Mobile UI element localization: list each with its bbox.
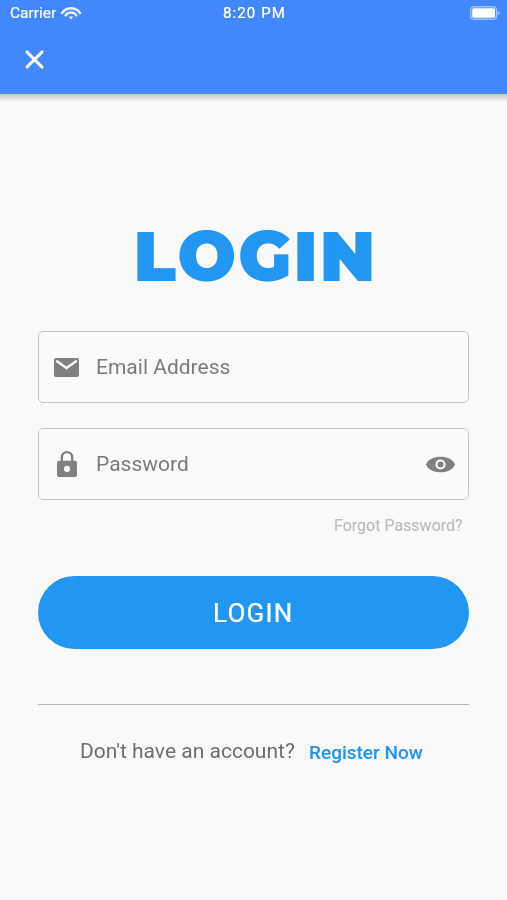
button[interactable]: Show password: [420, 444, 460, 484]
staticText: LOGIN: [213, 598, 294, 628]
button[interactable]: Password: [38, 428, 469, 500]
staticText: LOGIN: [2, 214, 507, 298]
staticText: Email Address: [96, 355, 231, 380]
staticText: Don't have an account?: [80, 739, 295, 764]
button[interactable]: Forgot Password?: [334, 516, 463, 535]
staticText: 8:20 PM: [223, 4, 286, 22]
button[interactable]: Register Now: [309, 741, 423, 763]
staticText: Carrier: [10, 4, 57, 22]
button[interactable]: Close: [18, 43, 51, 76]
staticText: Password: [96, 452, 189, 477]
button[interactable]: Email Address: [38, 331, 469, 403]
button[interactable]: LOGIN: [38, 576, 469, 649]
